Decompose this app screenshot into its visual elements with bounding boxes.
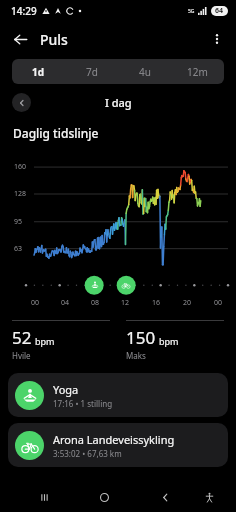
- staticText: 00: [214, 298, 223, 308]
- button[interactable]: 150: [126, 320, 224, 361]
- staticText: 1d: [32, 65, 45, 79]
- staticText: 64: [215, 6, 224, 16]
- button[interactable]: Recent apps: [14, 482, 74, 512]
- button[interactable]: 52: [12, 320, 110, 361]
- button[interactable]: Back: [6, 25, 34, 53]
- staticText: 16: [152, 298, 161, 308]
- staticText: Maks: [126, 350, 146, 361]
- staticText: 08: [91, 298, 100, 308]
- staticText: Daglig tidslinje: [13, 125, 99, 141]
- button[interactable]: 1d: [12, 59, 65, 84]
- staticText: 7d: [86, 65, 98, 79]
- staticText: 20: [183, 298, 192, 308]
- staticText: 17:16 • 1 stilling: [53, 398, 113, 409]
- staticText: 04: [61, 298, 70, 308]
- staticText: 4u: [139, 65, 151, 79]
- staticText: Arona Landeveissykling: [53, 432, 175, 447]
- staticText: 128: [14, 189, 27, 199]
- staticText: bpm: [35, 335, 55, 347]
- staticText: 12: [121, 298, 130, 308]
- staticText: 150: [126, 326, 156, 349]
- staticText: 14:29: [11, 4, 37, 18]
- staticText: Hvile: [12, 350, 31, 361]
- staticText: Yoga: [53, 382, 79, 397]
- staticText: 12m: [187, 65, 208, 79]
- staticText: 63: [14, 244, 23, 254]
- staticText: I dag: [105, 95, 132, 110]
- button[interactable]: 4u: [118, 59, 171, 84]
- button[interactable]: Home: [74, 482, 135, 512]
- button[interactable]: Yoga session: [88, 278, 102, 292]
- staticText: 95: [14, 217, 23, 227]
- button[interactable]: Accessibility: [196, 482, 222, 512]
- staticText: 5G: [188, 8, 195, 15]
- button[interactable]: Previous day: [12, 93, 31, 112]
- staticText: 160: [14, 162, 27, 172]
- button[interactable]: Arona Landeveissykling: [8, 423, 228, 467]
- staticText: 00: [31, 298, 40, 308]
- button[interactable]: 7d: [65, 59, 118, 84]
- staticText: bpm: [159, 335, 179, 347]
- button[interactable]: Cycling session: [119, 278, 133, 292]
- button[interactable]: 12m: [171, 59, 224, 84]
- button[interactable]: Yoga: [8, 373, 228, 417]
- staticText: 3:53:02 • 67,63 km: [53, 448, 122, 459]
- staticText: 52: [12, 326, 32, 349]
- button[interactable]: More options: [204, 26, 230, 52]
- button[interactable]: Back: [135, 482, 196, 512]
- staticText: Puls: [40, 30, 68, 49]
